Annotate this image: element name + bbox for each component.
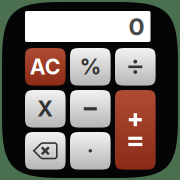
button[interactable]: All clear xyxy=(25,48,66,86)
button[interactable]: Minus xyxy=(70,90,111,128)
button[interactable]: Decimal point xyxy=(70,132,111,170)
staticText: X xyxy=(37,96,53,122)
staticText: AC xyxy=(30,54,61,80)
button[interactable]: Divide xyxy=(115,48,156,86)
staticText: % xyxy=(80,54,101,80)
button[interactable]: Delete xyxy=(25,132,66,170)
button[interactable]: Multiply xyxy=(25,90,66,128)
staticText: 0 xyxy=(128,12,144,41)
button[interactable]: Add and equals xyxy=(115,90,156,170)
button[interactable]: Percent xyxy=(70,48,111,86)
